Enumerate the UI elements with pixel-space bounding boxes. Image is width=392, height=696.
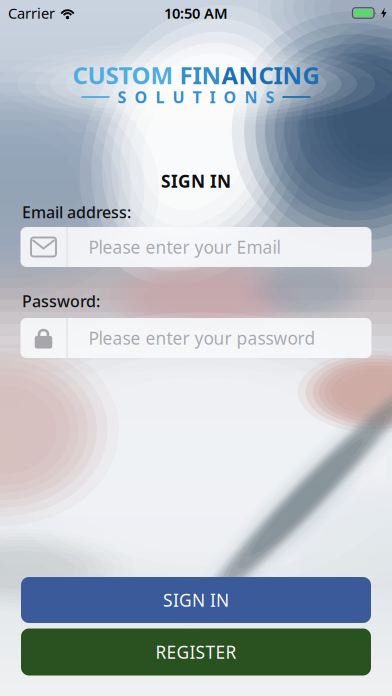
staticText: Please enter your Email <box>88 235 280 258</box>
staticText: Please enter your password <box>88 326 315 349</box>
button[interactable]: SIGN IN <box>21 577 371 623</box>
staticText: SIGN IN <box>163 588 229 611</box>
staticText: ANCING <box>221 59 319 91</box>
staticText: S O L U T I O N S <box>117 86 274 108</box>
staticText: REGISTER <box>155 640 236 663</box>
staticText: FIN <box>179 59 221 91</box>
staticText: Email address: <box>22 201 131 223</box>
staticText: Carrier <box>8 3 55 23</box>
button[interactable]: REGISTER <box>21 628 371 675</box>
staticText: Password: <box>22 290 100 312</box>
staticText: 10:50 AM <box>164 3 228 23</box>
staticText: SIGN IN <box>161 169 231 192</box>
staticText: CUSTOM <box>72 59 179 91</box>
